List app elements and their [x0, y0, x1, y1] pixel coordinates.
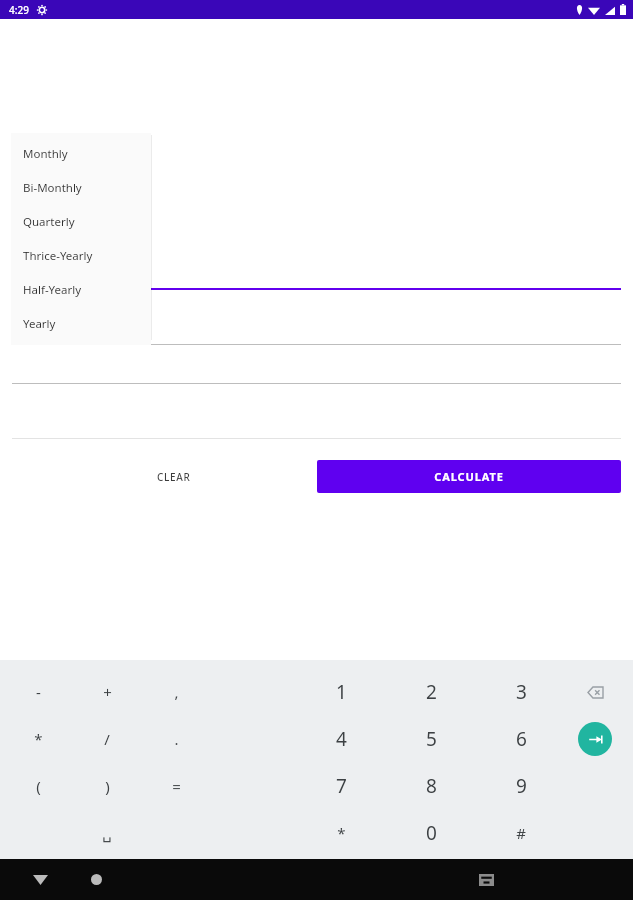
button[interactable]: ( [8, 764, 68, 808]
staticText: 9 [516, 773, 527, 799]
staticText: * [34, 729, 43, 749]
staticText: 4:29 [9, 3, 29, 17]
staticText: Thrice-Yearly [23, 248, 93, 264]
staticText: Quarterly [23, 214, 75, 230]
button[interactable]: + [77, 670, 137, 714]
button[interactable]: 7 [311, 764, 371, 808]
staticText: ) [105, 776, 110, 796]
staticText: = [172, 776, 181, 796]
button[interactable]: * [311, 811, 371, 855]
staticText: ␣ [102, 825, 112, 842]
staticText: + [103, 682, 112, 702]
button[interactable]: 2 [401, 670, 461, 714]
button[interactable]: CLEAR [147, 462, 201, 492]
button[interactable]: / [77, 717, 137, 761]
staticText: 8 [426, 773, 437, 799]
staticText: / [104, 729, 110, 749]
button[interactable]: 1 [311, 670, 371, 714]
button[interactable]: Back [20, 859, 60, 900]
staticText: CALCULATE [434, 469, 504, 484]
button[interactable]: Next [578, 722, 612, 756]
staticText: Deposit Value * [12, 243, 78, 255]
staticText: Half-Yearly [23, 282, 82, 298]
staticText: , [174, 682, 179, 702]
button[interactable]: Thrice-Yearly [11, 239, 151, 273]
button[interactable]: Monthly [11, 137, 151, 171]
button[interactable]: - [8, 670, 68, 714]
button[interactable]: Home [76, 859, 116, 900]
staticText: CLEAR [157, 470, 191, 484]
button[interactable]: 3 [491, 670, 551, 714]
button[interactable]: CALCULATE [317, 460, 621, 493]
button[interactable]: Deposit Value * [12, 243, 621, 290]
staticText: Frequency * [12, 320, 89, 338]
button[interactable]: 4 [311, 717, 371, 761]
staticText: Yearly [23, 316, 56, 332]
button[interactable]: 0 [401, 811, 461, 855]
button[interactable]: Switch keyboard [466, 859, 506, 900]
button[interactable]: Half-Yearly [11, 273, 151, 307]
staticText: 6 [516, 726, 527, 752]
staticText: 1 [336, 679, 347, 705]
staticText: 5 [426, 726, 437, 752]
staticText: - [36, 682, 41, 702]
button[interactable]: ) [77, 764, 137, 808]
staticText: Monthly [23, 146, 68, 162]
staticText: 4 [336, 726, 347, 752]
button[interactable]: Backspace [577, 674, 613, 710]
staticText: ( [36, 776, 41, 796]
button[interactable]: = [146, 764, 206, 808]
button[interactable]: * [8, 717, 68, 761]
staticText: * [337, 823, 346, 843]
button[interactable]: 8 [401, 764, 461, 808]
staticText: 2 [426, 679, 437, 705]
staticText: 7 [336, 773, 347, 799]
staticText: 0 [426, 820, 437, 846]
staticText: # [516, 823, 526, 843]
button[interactable]: . [146, 717, 206, 761]
button[interactable]: Bi-Monthly [11, 171, 151, 205]
button[interactable]: 9 [491, 764, 551, 808]
button[interactable]: 6 [491, 717, 551, 761]
button[interactable]: Frequency * [12, 320, 621, 345]
button[interactable]: # [491, 811, 551, 855]
staticText: Bi-Monthly [23, 180, 82, 196]
staticText: . [174, 729, 179, 749]
button[interactable]: Yearly [11, 307, 151, 341]
button[interactable]: ␣ [77, 811, 137, 855]
button[interactable]: , [146, 670, 206, 714]
button[interactable]: 5 [401, 717, 461, 761]
staticText: 3 [516, 679, 527, 705]
button[interactable]: Quarterly [11, 205, 151, 239]
